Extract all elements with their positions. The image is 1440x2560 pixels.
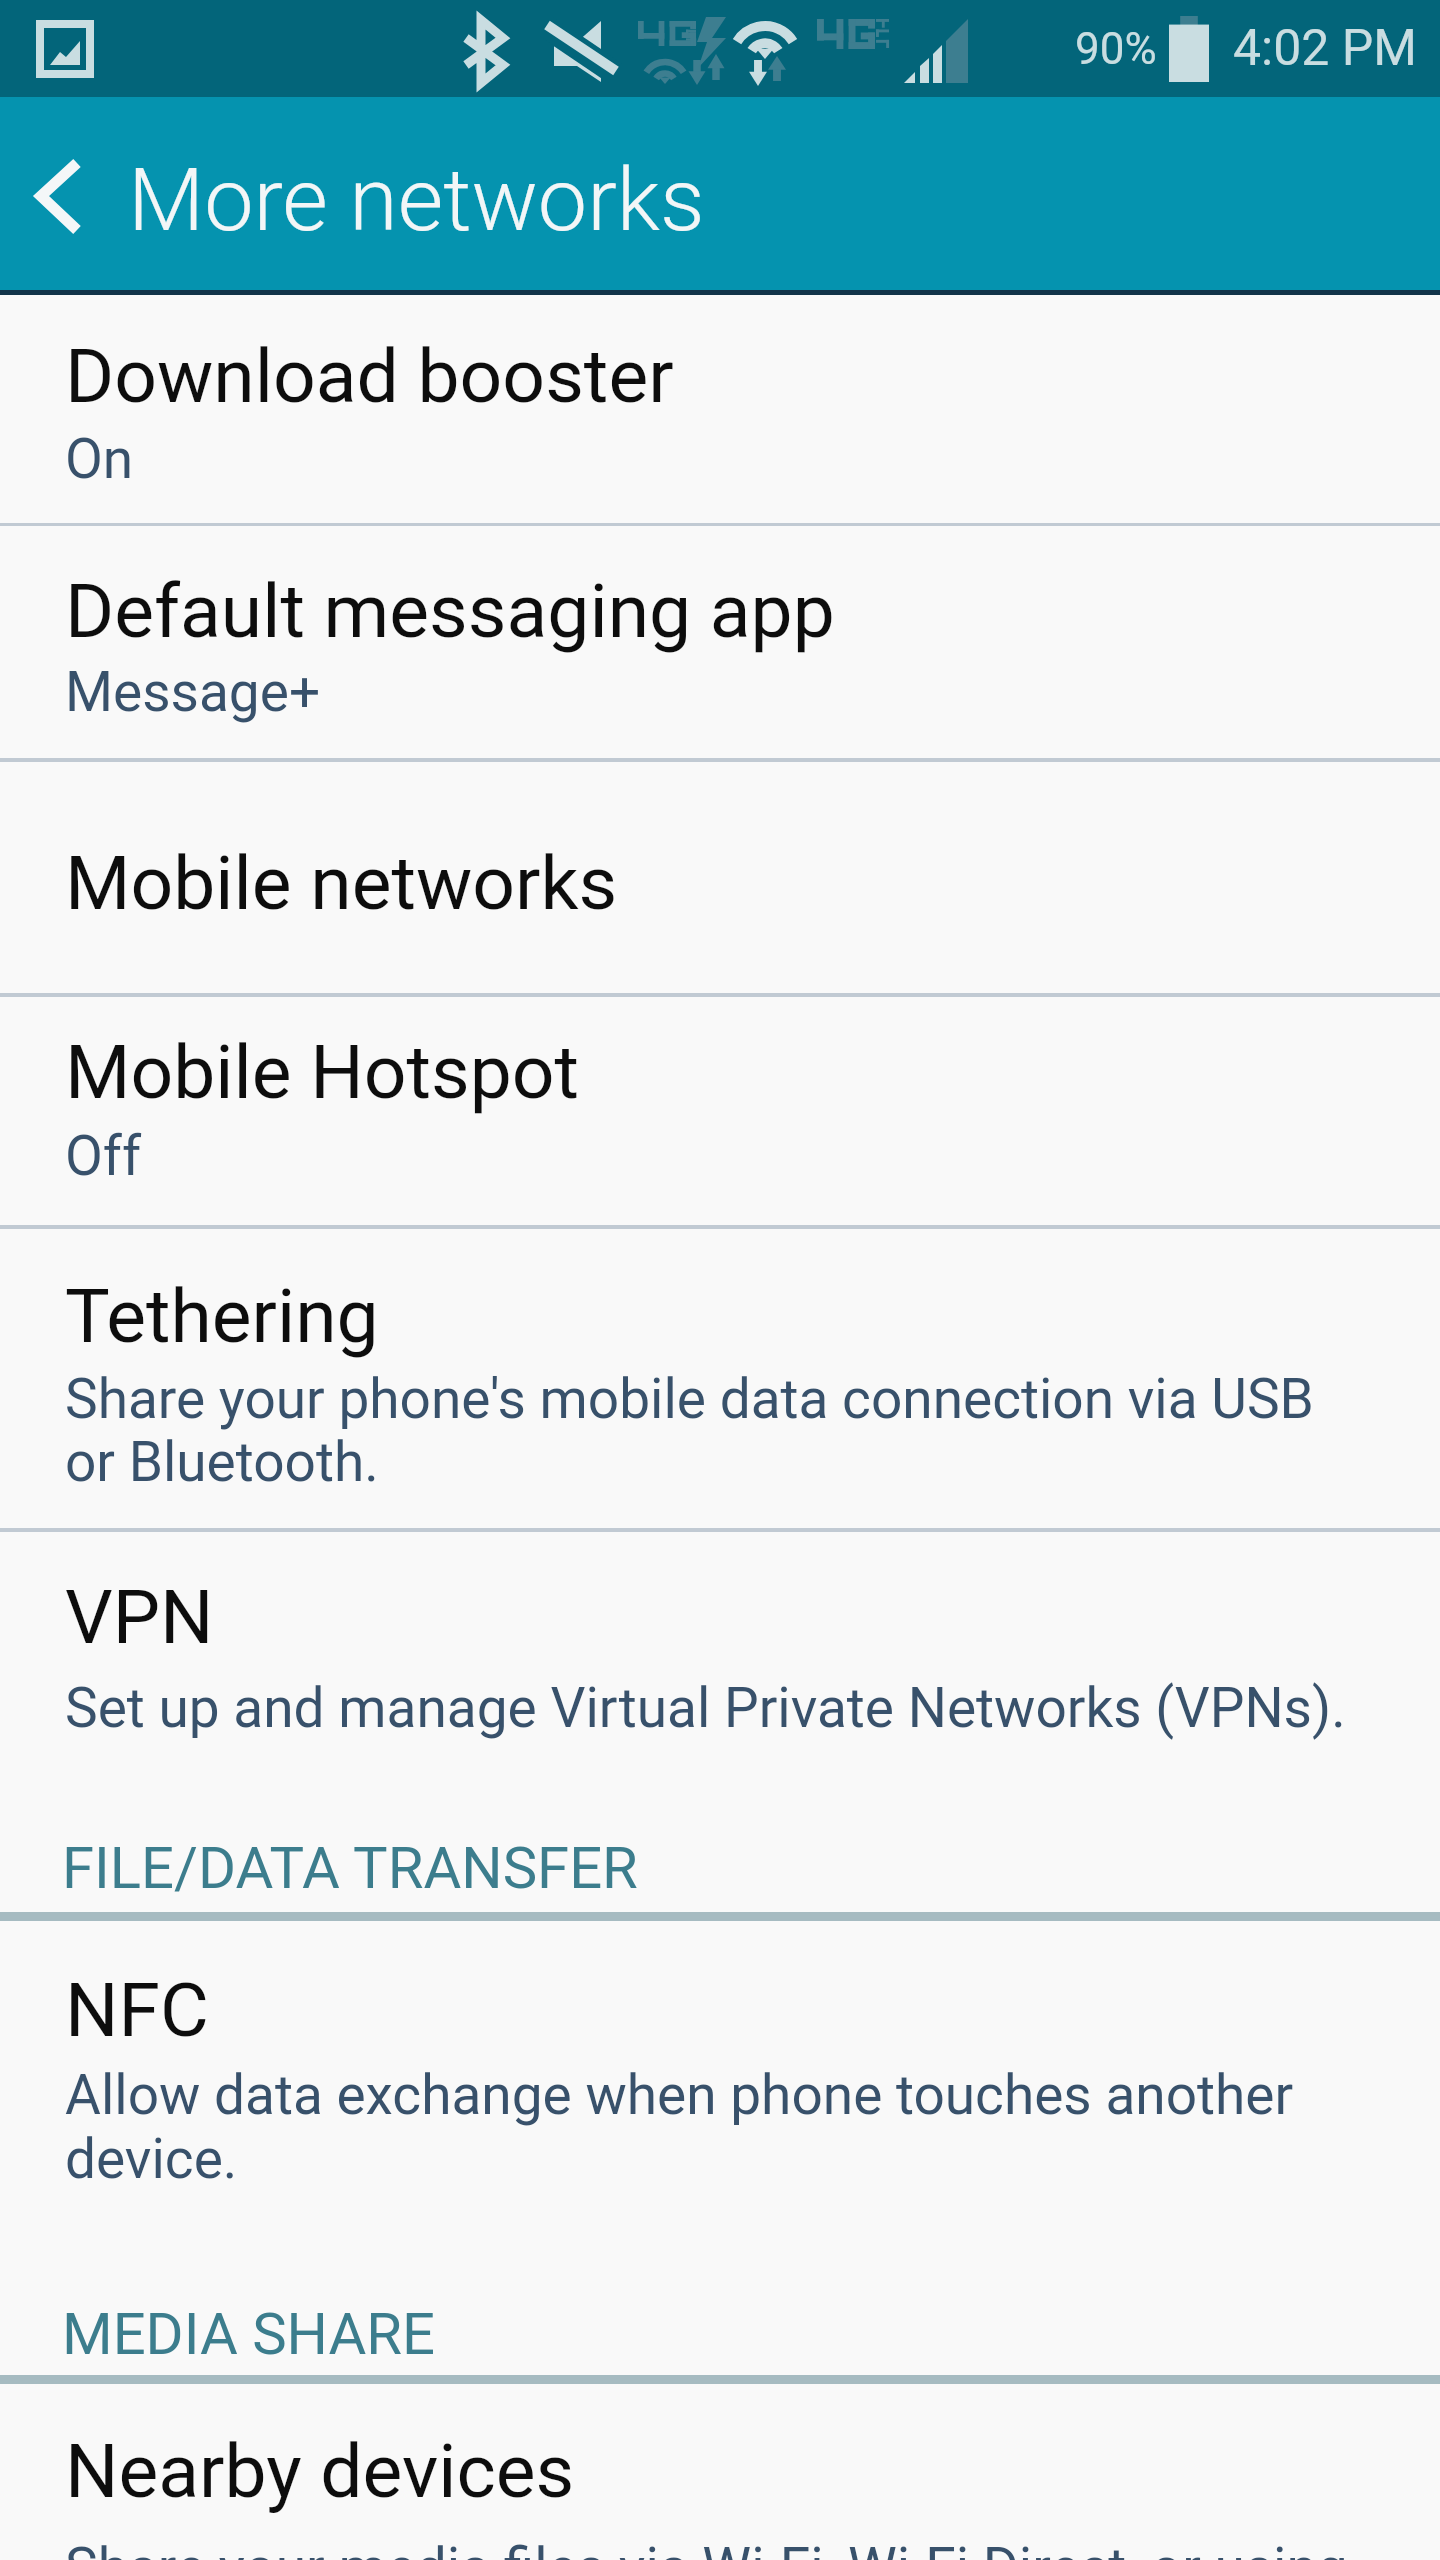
staticText: On — [65, 427, 134, 491]
button[interactable] — [0, 295, 1440, 523]
staticText: device. — [65, 2127, 238, 2191]
button[interactable] — [0, 1921, 1440, 2375]
staticText: Tethering — [65, 1272, 379, 1360]
staticText: Download booster — [65, 332, 674, 420]
staticText: Mobile Hotspot — [65, 1028, 580, 1116]
staticText: Share your media files via Wi-Fi, Wi-Fi … — [65, 2536, 1348, 2560]
button[interactable] — [0, 1229, 1440, 1528]
staticText: Allow data exchange when phone touches a… — [65, 2063, 1294, 2127]
button[interactable] — [0, 526, 1440, 758]
staticText: FILE/DATA TRANSFER — [62, 1834, 638, 1902]
staticText: 4:02 PM — [1233, 19, 1418, 78]
staticText: Off — [65, 1124, 142, 1188]
staticText: VPN — [65, 1573, 214, 1661]
staticText: More networks — [128, 148, 705, 251]
staticText: Default messaging app — [65, 567, 835, 655]
staticText: Nearby devices — [65, 2427, 575, 2515]
button[interactable] — [0, 1532, 1440, 1912]
staticText: 90% — [1075, 23, 1157, 75]
button[interactable] — [0, 2384, 1440, 2560]
staticText: or Bluetooth. — [65, 1430, 379, 1494]
button[interactable] — [0, 762, 1440, 993]
staticText: Message+ — [65, 660, 321, 724]
staticText: Share your phone's mobile data connectio… — [65, 1367, 1314, 1431]
staticText: NFC — [65, 1966, 209, 2054]
staticText: MEDIA SHARE — [62, 2300, 436, 2368]
staticText: Set up and manage Virtual Private Networ… — [65, 1676, 1346, 1740]
button[interactable]: Navigate up — [0, 97, 128, 290]
button[interactable] — [0, 997, 1440, 1225]
staticText: Mobile networks — [65, 839, 618, 927]
